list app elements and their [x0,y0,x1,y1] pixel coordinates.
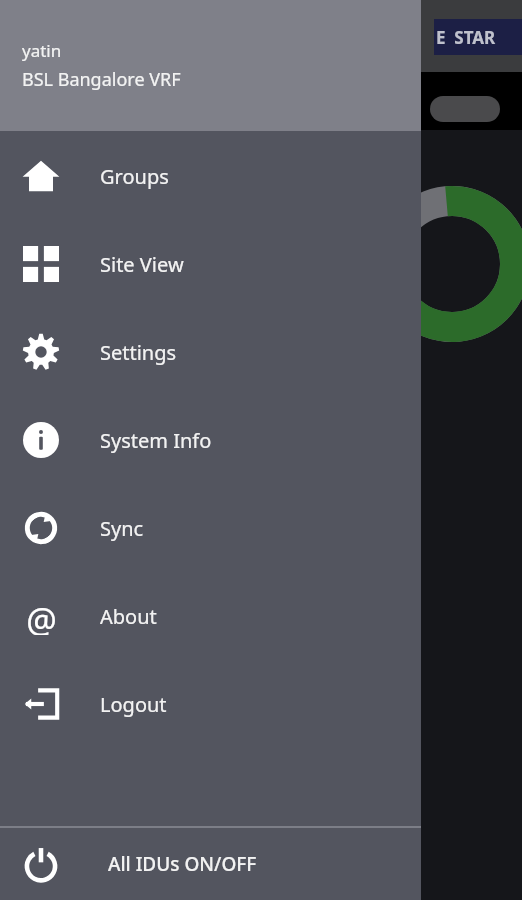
button[interactable]: Site View [0,220,421,308]
staticText: Groups [100,163,169,190]
button[interactable]: yatin [0,0,421,131]
staticText: System Info [100,427,212,454]
other: System Info [23,422,59,458]
button[interactable]: Groups [0,132,421,220]
other: Settings [22,333,60,371]
button[interactable]: Settings [0,308,421,396]
button[interactable]: All IDUs ON/OFF [0,828,421,900]
other: Logout [23,686,59,722]
staticText: BSL Bangalore VRF [22,67,181,92]
staticText: @ [26,597,57,635]
staticText: Sync [100,515,144,542]
other: Sync [22,509,60,547]
staticText: All IDUs ON/OFF [108,851,257,877]
button[interactable]: Logout [0,660,421,748]
other: All IDUs ON/OFF [22,845,60,883]
staticText: Site View [100,251,184,278]
staticText: Logout [100,691,167,718]
button[interactable]: About [0,572,421,660]
button[interactable]: Sync [0,484,421,572]
staticText: Settings [100,339,177,366]
staticText: E STAR [436,26,496,49]
button[interactable]: E STAR [434,19,522,55]
other: Groups [21,156,61,196]
button[interactable] [430,96,500,122]
staticText: About [100,603,157,630]
staticText: yatin [22,39,62,62]
other: About [22,597,60,635]
button[interactable]: System Info [0,396,421,484]
other: Site View [23,246,59,282]
